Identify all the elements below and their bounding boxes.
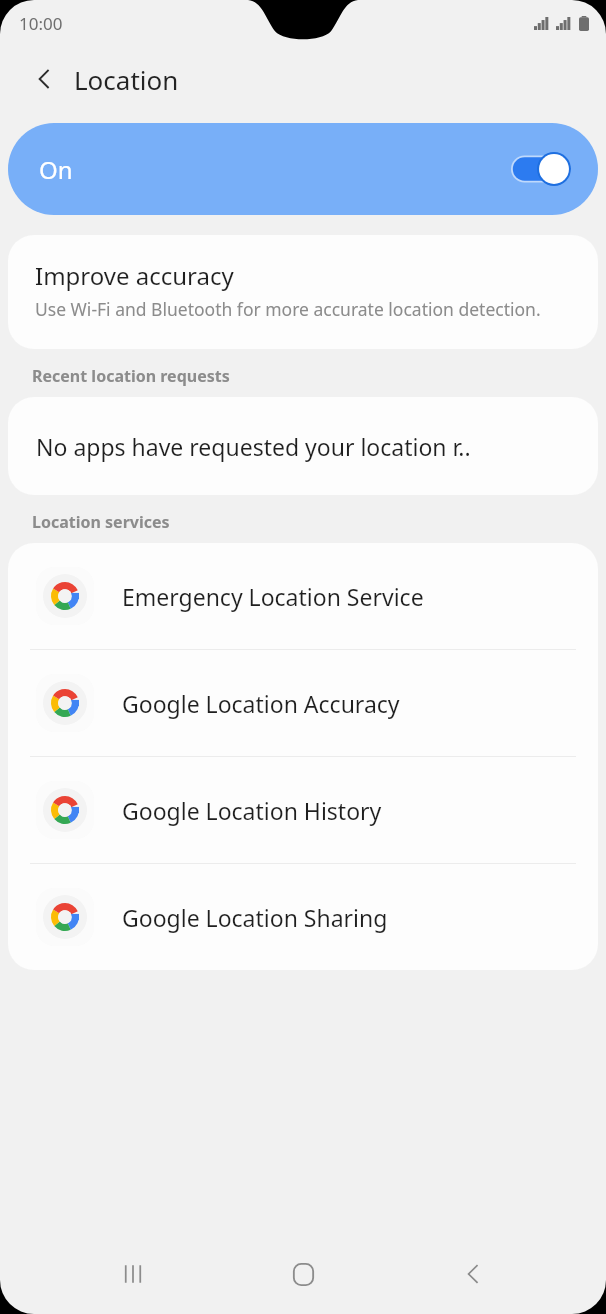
staticText: Location [74, 62, 179, 97]
staticText: Recent location requests [32, 365, 230, 387]
staticText: Emergency Location Service [122, 581, 424, 612]
staticText: Google Location History [122, 795, 382, 826]
button[interactable]: Recents [96, 1237, 170, 1311]
staticText: Google Location Accuracy [122, 688, 400, 719]
staticText: 10:00 [19, 12, 63, 35]
staticText: No apps have requested your location r.. [36, 431, 471, 462]
button[interactable]: Back [24, 59, 64, 99]
button[interactable]: Google Location Sharing [8, 864, 598, 970]
button[interactable]: Improve accuracy [8, 235, 598, 349]
button[interactable]: Back [436, 1237, 510, 1311]
staticText: Use Wi-Fi and Bluetooth for more accurat… [35, 297, 541, 321]
button[interactable]: Emergency Location Service [8, 543, 598, 649]
staticText: Improve accuracy [35, 259, 234, 292]
button[interactable]: No apps have requested your location r.. [8, 397, 598, 495]
staticText: Google Location Sharing [122, 902, 388, 933]
button[interactable]: Google Location History [8, 757, 598, 863]
button[interactable]: Google Location Accuracy [8, 650, 598, 756]
staticText: Location services [32, 511, 170, 533]
button[interactable]: Home [266, 1237, 340, 1311]
button[interactable]: On [8, 123, 598, 215]
staticText: On [39, 153, 73, 186]
